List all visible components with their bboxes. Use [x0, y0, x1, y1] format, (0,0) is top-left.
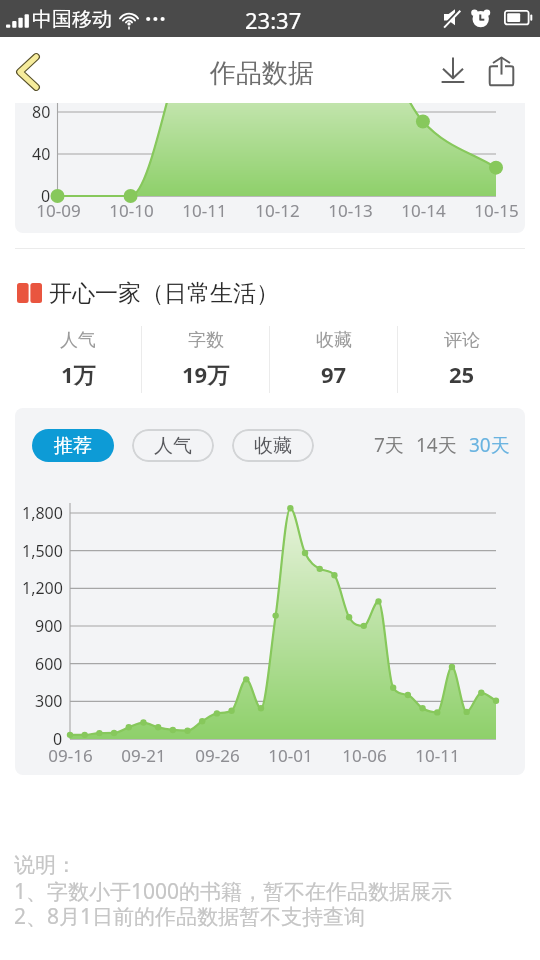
staticText: 10-13	[328, 199, 373, 222]
button[interactable]: 7天	[373, 427, 405, 463]
staticText: 19万	[182, 359, 230, 389]
staticText: 说明：	[14, 852, 77, 878]
staticText: 23:37	[245, 5, 302, 35]
staticText: 0	[41, 185, 51, 207]
staticText: 09-26	[195, 744, 240, 767]
staticText: 10-11	[182, 199, 227, 222]
staticText: 900	[35, 615, 63, 637]
button[interactable]: Back	[6, 45, 50, 97]
staticText: 作品数据	[210, 57, 314, 90]
staticText: 收藏	[316, 329, 352, 352]
staticText: 7天	[374, 432, 404, 458]
staticText: 10-09	[36, 199, 81, 222]
button[interactable]: 收藏	[270, 318, 398, 400]
button[interactable]: 人气	[132, 429, 214, 462]
staticText: 40	[32, 143, 51, 165]
staticText: 人气	[154, 434, 192, 458]
staticText: 300	[35, 690, 63, 712]
staticText: 10-14	[401, 199, 446, 222]
button[interactable]: 14天	[415, 427, 458, 463]
staticText: 0	[53, 728, 63, 750]
staticText: 人气	[60, 329, 96, 352]
staticText: 10-15	[474, 199, 519, 222]
button[interactable]: 评论	[398, 318, 526, 400]
staticText: 10-11	[415, 744, 460, 767]
staticText: 1,800	[22, 502, 63, 524]
staticText: 中国移动	[32, 7, 112, 32]
button[interactable]: 人气	[14, 318, 142, 400]
staticText: 09-16	[48, 744, 93, 767]
staticText: 80	[32, 103, 51, 123]
button[interactable]: 推荐	[32, 429, 114, 462]
staticText: 600	[35, 653, 63, 675]
button[interactable]: 字数	[142, 318, 270, 400]
staticText: 10-06	[342, 744, 387, 767]
staticText: 推荐	[54, 434, 92, 458]
staticText: 25	[449, 359, 475, 389]
staticText: 10-01	[268, 744, 313, 767]
button[interactable]: 30天	[468, 427, 511, 463]
staticText: 开心一家（日常生活）	[49, 279, 279, 308]
staticText: 1、字数小于1000的书籍，暂不在作品数据展示	[14, 877, 453, 906]
staticText: 1,500	[22, 540, 63, 562]
staticText: 1,200	[22, 577, 63, 599]
staticText: 97	[321, 359, 347, 389]
button[interactable]: Share	[478, 43, 524, 93]
staticText: 评论	[444, 329, 480, 352]
staticText: 09-21	[121, 744, 166, 767]
staticText: 2、8月1日前的作品数据暂不支持查询	[14, 902, 366, 931]
staticText: 收藏	[254, 434, 292, 458]
staticText: 字数	[188, 329, 224, 352]
staticText: 10-10	[109, 199, 154, 222]
button[interactable]: 收藏	[232, 429, 314, 462]
staticText: 30天	[469, 432, 510, 458]
button[interactable]: Download	[430, 43, 476, 93]
staticText: 1万	[61, 359, 96, 389]
staticText: 10-12	[255, 199, 300, 222]
staticText: 14天	[416, 432, 457, 458]
